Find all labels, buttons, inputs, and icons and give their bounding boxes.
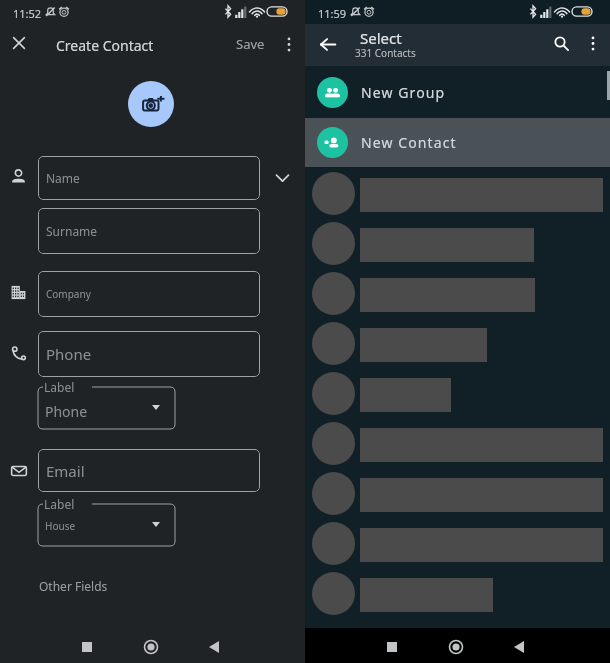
- staticText: 331 Contacts: [355, 46, 416, 60]
- button[interactable]: Email: [38, 449, 260, 492]
- button[interactable]: Recents: [75, 635, 99, 659]
- button[interactable]: Back: [507, 635, 531, 659]
- button[interactable]: Contact: [305, 322, 610, 372]
- button[interactable]: Search: [546, 28, 576, 58]
- staticText: Create Contact: [56, 36, 154, 55]
- button[interactable]: Contact: [305, 472, 610, 522]
- button[interactable]: More options: [275, 30, 303, 58]
- button[interactable]: New Contact: [305, 118, 610, 167]
- button[interactable]: Contact: [305, 422, 610, 472]
- staticText: Phone: [46, 344, 92, 364]
- button[interactable]: Other Fields: [39, 578, 108, 594]
- button[interactable]: Label: [38, 497, 175, 546]
- staticText: Label: [44, 496, 75, 512]
- button[interactable]: Expand name fields: [268, 164, 296, 192]
- staticText: Select: [360, 28, 402, 48]
- button[interactable]: Contact: [305, 272, 610, 322]
- button[interactable]: Save: [228, 30, 272, 58]
- button[interactable]: Surname: [38, 208, 260, 254]
- staticText: New Contact: [361, 133, 457, 152]
- button[interactable]: Contact: [305, 172, 610, 222]
- button[interactable]: Name: [38, 156, 260, 200]
- button[interactable]: Label: [38, 380, 175, 429]
- staticText: Company: [46, 287, 91, 301]
- button[interactable]: Phone: [38, 331, 260, 377]
- staticText: House: [45, 519, 76, 533]
- button[interactable]: Close: [3, 27, 35, 59]
- staticText: 11:59: [318, 6, 347, 21]
- button[interactable]: Back: [313, 29, 343, 59]
- staticText: Phone: [45, 402, 88, 421]
- staticText: Label: [44, 379, 75, 395]
- staticText: Surname: [46, 223, 98, 239]
- button[interactable]: New Group: [305, 66, 610, 118]
- button[interactable]: Home: [444, 635, 468, 659]
- staticText: New Group: [361, 83, 446, 102]
- staticText: Save: [236, 35, 265, 53]
- button[interactable]: Back: [202, 635, 226, 659]
- button[interactable]: Recents: [380, 635, 404, 659]
- staticText: 11:52: [13, 6, 42, 21]
- staticText: Other Fields: [39, 578, 108, 594]
- button[interactable]: More options: [578, 28, 608, 58]
- button[interactable]: Contact: [305, 572, 610, 622]
- button[interactable]: Contact: [305, 222, 610, 272]
- button[interactable]: Contact: [305, 372, 610, 422]
- staticText: Name: [46, 170, 80, 186]
- staticText: Email: [46, 461, 85, 481]
- button[interactable]: Contact: [305, 522, 610, 572]
- button[interactable]: Company: [38, 271, 260, 317]
- button[interactable]: Home: [139, 635, 163, 659]
- button[interactable]: Add photo: [128, 81, 174, 127]
